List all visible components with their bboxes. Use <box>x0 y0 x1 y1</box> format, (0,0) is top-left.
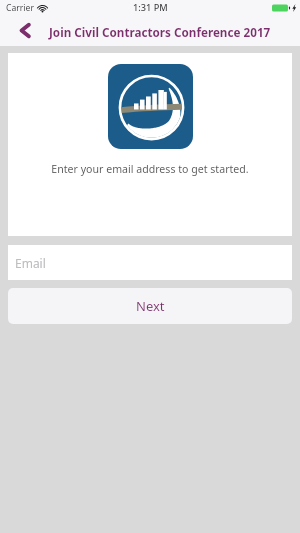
button[interactable]: Next <box>8 288 292 324</box>
staticText: Email <box>15 255 46 271</box>
staticText: Carrier <box>6 2 34 14</box>
button[interactable]: Email <box>8 245 292 280</box>
staticText: Next <box>136 297 165 315</box>
staticText: Enter your email address to get started. <box>51 162 249 176</box>
staticText: Join Civil Contractors Conference 2017 <box>49 24 271 40</box>
button[interactable]: Back <box>4 16 46 45</box>
staticText: 1:31 PM <box>133 1 168 14</box>
